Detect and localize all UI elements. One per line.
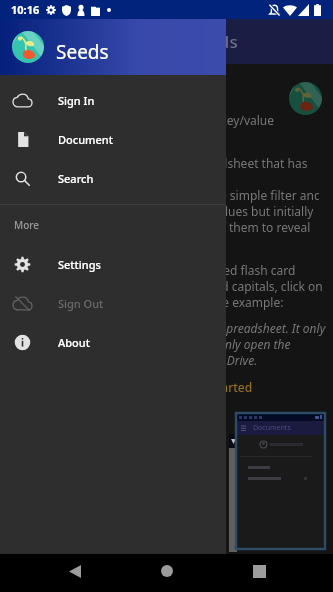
staticText: About [58, 335, 90, 350]
staticText: Open the sample Google spreadsheet. It o… [87, 320, 326, 336]
staticText: Sign In [58, 93, 95, 108]
staticText: Search [58, 171, 94, 186]
button[interactable]: Search [0, 159, 226, 198]
staticText: spreadsheet of world country and capital… [38, 278, 323, 294]
staticText: just click the link shown in the example… [61, 294, 284, 310]
staticText: pairs that are stored in a Google spread… [4, 155, 308, 171]
button[interactable]: Document [0, 120, 226, 159]
button[interactable]: Back [60, 556, 90, 586]
button[interactable]: Home [152, 556, 182, 586]
button[interactable]: About [0, 323, 226, 362]
staticText: To try out the shared and printed flash … [51, 262, 296, 278]
staticText: Document [58, 132, 113, 147]
staticText: Documents [253, 423, 291, 433]
button[interactable]: Recent apps [244, 556, 274, 586]
staticText: Seeds [56, 39, 109, 65]
staticText: Sign Out [58, 296, 104, 311]
staticText: and then you can tap on any of them to r… [51, 219, 311, 235]
staticText: 10:16 [11, 2, 40, 17]
staticText: Settings [58, 257, 101, 272]
staticText: asks for permission to read-only open th… [70, 336, 291, 352]
staticText: More [14, 218, 40, 232]
staticText: The application provides a very easy to … [0, 187, 319, 203]
staticText: search. You can choose to hide the value… [11, 203, 314, 219]
staticText: Getting Started [164, 379, 253, 395]
staticText: Seeds [190, 30, 238, 53]
button[interactable]: Sign Out [0, 284, 226, 323]
staticText: file that is stored on your Google Drive… [50, 352, 258, 368]
button[interactable]: Settings [0, 245, 226, 284]
staticText: Seeds is an application that displays ke… [15, 112, 274, 128]
button[interactable]: Sign In [0, 81, 226, 120]
